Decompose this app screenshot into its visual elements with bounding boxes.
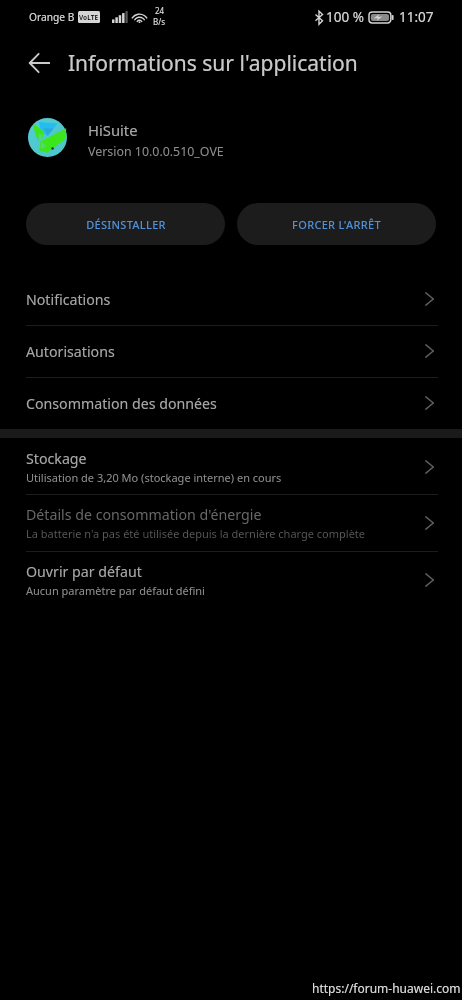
- button[interactable]: Détails de consommation d'énergie: [0, 494, 462, 551]
- staticText: Orange B: [29, 10, 75, 24]
- staticText: La batterie n'a pas été utilisée depuis …: [26, 526, 366, 541]
- staticText: Version 10.0.0.510_OVE: [88, 143, 224, 160]
- staticText: FORCER L'ARRÊT: [292, 217, 381, 232]
- staticText: https://forum-huawei.com: [312, 980, 461, 996]
- staticText: Détails de consommation d'énergie: [26, 505, 262, 524]
- staticText: Consommation des données: [26, 394, 217, 413]
- staticText: B/s: [153, 16, 166, 27]
- staticText: Aucun paramètre par défaut défini: [26, 583, 205, 598]
- button[interactable]: Ouvrir par défaut: [0, 551, 462, 608]
- button[interactable]: Back: [19, 43, 59, 83]
- staticText: Ouvrir par défaut: [26, 562, 142, 581]
- staticText: DÉSINSTALLER: [86, 217, 166, 232]
- staticText: 11:07: [399, 8, 434, 26]
- staticText: Notifications: [26, 290, 111, 309]
- button[interactable]: Consommation des données: [0, 377, 462, 429]
- staticText: Autorisations: [26, 342, 115, 361]
- button[interactable]: Notifications: [0, 273, 462, 325]
- staticText: Utilisation de 3,20 Mo (stockage interne…: [26, 470, 282, 485]
- staticText: HiSuite: [88, 120, 138, 140]
- button[interactable]: FORCER L'ARRÊT: [237, 203, 436, 245]
- staticText: Informations sur l'application: [68, 49, 358, 78]
- button[interactable]: Stockage: [0, 438, 462, 495]
- button[interactable]: Autorisations: [0, 325, 462, 377]
- staticText: VoLTE: [79, 13, 99, 22]
- staticText: 100 %: [326, 8, 364, 26]
- staticText: Stockage: [26, 449, 87, 468]
- staticText: 24: [155, 5, 165, 16]
- button[interactable]: DÉSINSTALLER: [26, 203, 225, 245]
